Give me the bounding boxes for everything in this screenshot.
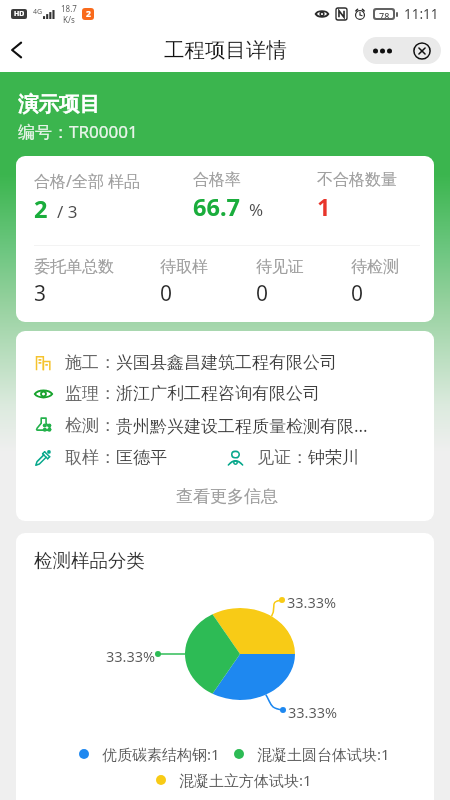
button[interactable]: 查看更多信息 (33, 480, 420, 513)
staticText: 优质碳素结构钢:1 (102, 744, 220, 764)
staticText: 待检测 (351, 257, 399, 277)
staticText: HD (14, 9, 25, 19)
staticText: 取样： (65, 447, 116, 468)
staticText: K/s (63, 14, 75, 25)
button[interactable]: Close (402, 37, 441, 64)
staticText: 混凝土立方体试块:1 (179, 770, 312, 790)
staticText: 78 (379, 10, 390, 18)
staticText: 检测样品分类 (34, 549, 145, 572)
button[interactable]: Back (0, 34, 32, 66)
staticText: 钟荣川 (308, 447, 359, 468)
staticText: 不合格数量 (317, 170, 397, 190)
staticText: 合格率 (193, 170, 241, 190)
staticText: 18.7 (61, 3, 77, 14)
staticText: 贵州黔兴建设工程质量检测有限... (116, 414, 368, 437)
staticText: 33.33% (106, 646, 156, 666)
button[interactable]: More options (363, 37, 402, 64)
staticText: 演示项目 (18, 91, 100, 117)
staticText: 匡德平 (116, 447, 167, 468)
staticText: 浙江广利工程咨询有限公司 (116, 383, 320, 404)
staticText: 合格/全部 样品 (34, 170, 141, 192)
staticText: % (249, 198, 264, 221)
staticText: 见证： (257, 447, 308, 468)
staticText: 工程项目详情 (164, 37, 287, 63)
staticText: 33.33% (288, 702, 338, 722)
staticText: 3 (34, 279, 47, 308)
staticText: 1 (317, 191, 331, 223)
staticText: 0 (160, 279, 173, 308)
staticText: 11:11 (404, 5, 439, 23)
staticText: / 3 (57, 200, 78, 223)
staticText: 混凝土圆台体试块:1 (257, 744, 390, 764)
staticText: 66.7 (193, 191, 240, 223)
staticText: 施工： (65, 352, 116, 373)
staticText: 2 (34, 193, 48, 225)
staticText: 待见证 (256, 257, 304, 277)
staticText: 待取样 (160, 257, 208, 277)
staticText: 编号：TR00001 (18, 120, 138, 143)
staticText: 4G (33, 7, 43, 17)
staticText: 检测： (65, 415, 116, 436)
staticText: 查看更多信息 (176, 486, 278, 507)
staticText: 监理： (65, 383, 116, 404)
staticText: 0 (351, 279, 364, 308)
staticText: 0 (256, 279, 269, 308)
staticText: 2 (86, 8, 91, 20)
staticText: 33.33% (287, 592, 337, 612)
staticText: 兴国县鑫昌建筑工程有限公司 (116, 352, 337, 373)
staticText: 委托单总数 (34, 257, 114, 277)
